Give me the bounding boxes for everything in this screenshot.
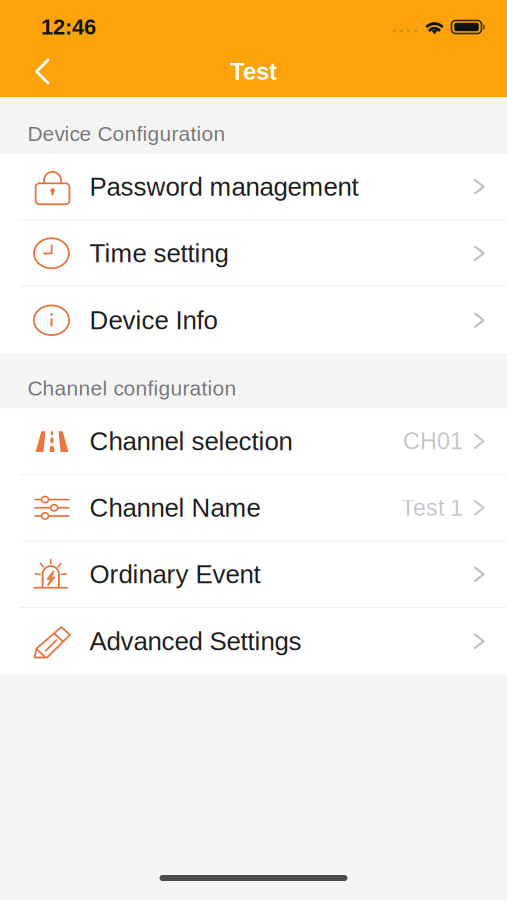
button[interactable]: Password management: [0, 154, 507, 220]
staticText: Test 1: [401, 495, 463, 521]
staticText: Password management: [89, 172, 358, 201]
staticText: Device Info: [89, 306, 217, 335]
staticText: CH01: [403, 428, 463, 454]
button[interactable]: Back: [0, 48, 68, 95]
staticText: Time setting: [89, 239, 228, 268]
staticText: Channel configuration: [27, 377, 236, 400]
button[interactable]: Ordinary Event: [0, 541, 507, 608]
button[interactable]: Time setting: [0, 220, 507, 287]
staticText: Ordinary Event: [89, 560, 260, 589]
staticText: Channel Name: [89, 493, 260, 522]
staticText: Test: [230, 58, 277, 85]
button[interactable]: Device Info: [0, 287, 507, 353]
staticText: Channel selection: [89, 427, 292, 456]
staticText: 12:46: [41, 15, 96, 39]
staticText: Device Configuration: [27, 122, 225, 145]
staticText: Advanced Settings: [89, 627, 301, 656]
button[interactable]: Channel selection: [0, 408, 507, 475]
button[interactable]: Advanced Settings: [0, 608, 507, 674]
button[interactable]: Channel Name: [0, 475, 507, 541]
